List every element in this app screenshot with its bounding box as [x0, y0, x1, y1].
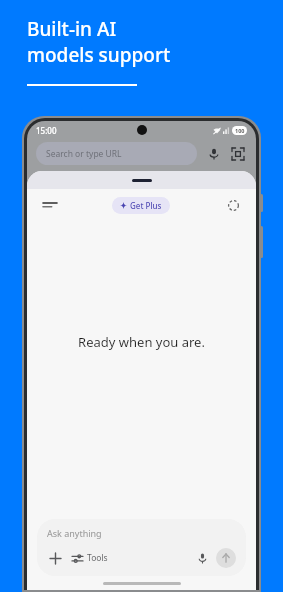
button[interactable]: Send	[216, 548, 236, 568]
staticText: Ask anything	[47, 527, 102, 539]
staticText: 15:00	[36, 125, 57, 136]
button[interactable]: Voice search	[206, 146, 222, 162]
staticText: 100	[235, 127, 245, 134]
button[interactable]: Menu	[39, 194, 61, 216]
staticText: Get Plus	[130, 200, 162, 211]
button[interactable]: Ask anything	[37, 519, 246, 576]
staticText: Tools	[87, 552, 108, 564]
button[interactable]: Temporary chat	[222, 194, 244, 216]
button[interactable]: Search or type URL	[36, 142, 197, 165]
staticText: Built-in AI models support	[27, 16, 171, 67]
button[interactable]: Get Plus	[112, 197, 170, 214]
button[interactable]: Add attachment	[47, 550, 63, 566]
button[interactable]: Voice input	[194, 550, 210, 566]
staticText: Ready when you are.	[78, 333, 205, 351]
staticText: Search or type URL	[46, 148, 122, 160]
button[interactable]: Scan QR code	[230, 146, 246, 162]
button[interactable]: Tools	[72, 552, 108, 564]
